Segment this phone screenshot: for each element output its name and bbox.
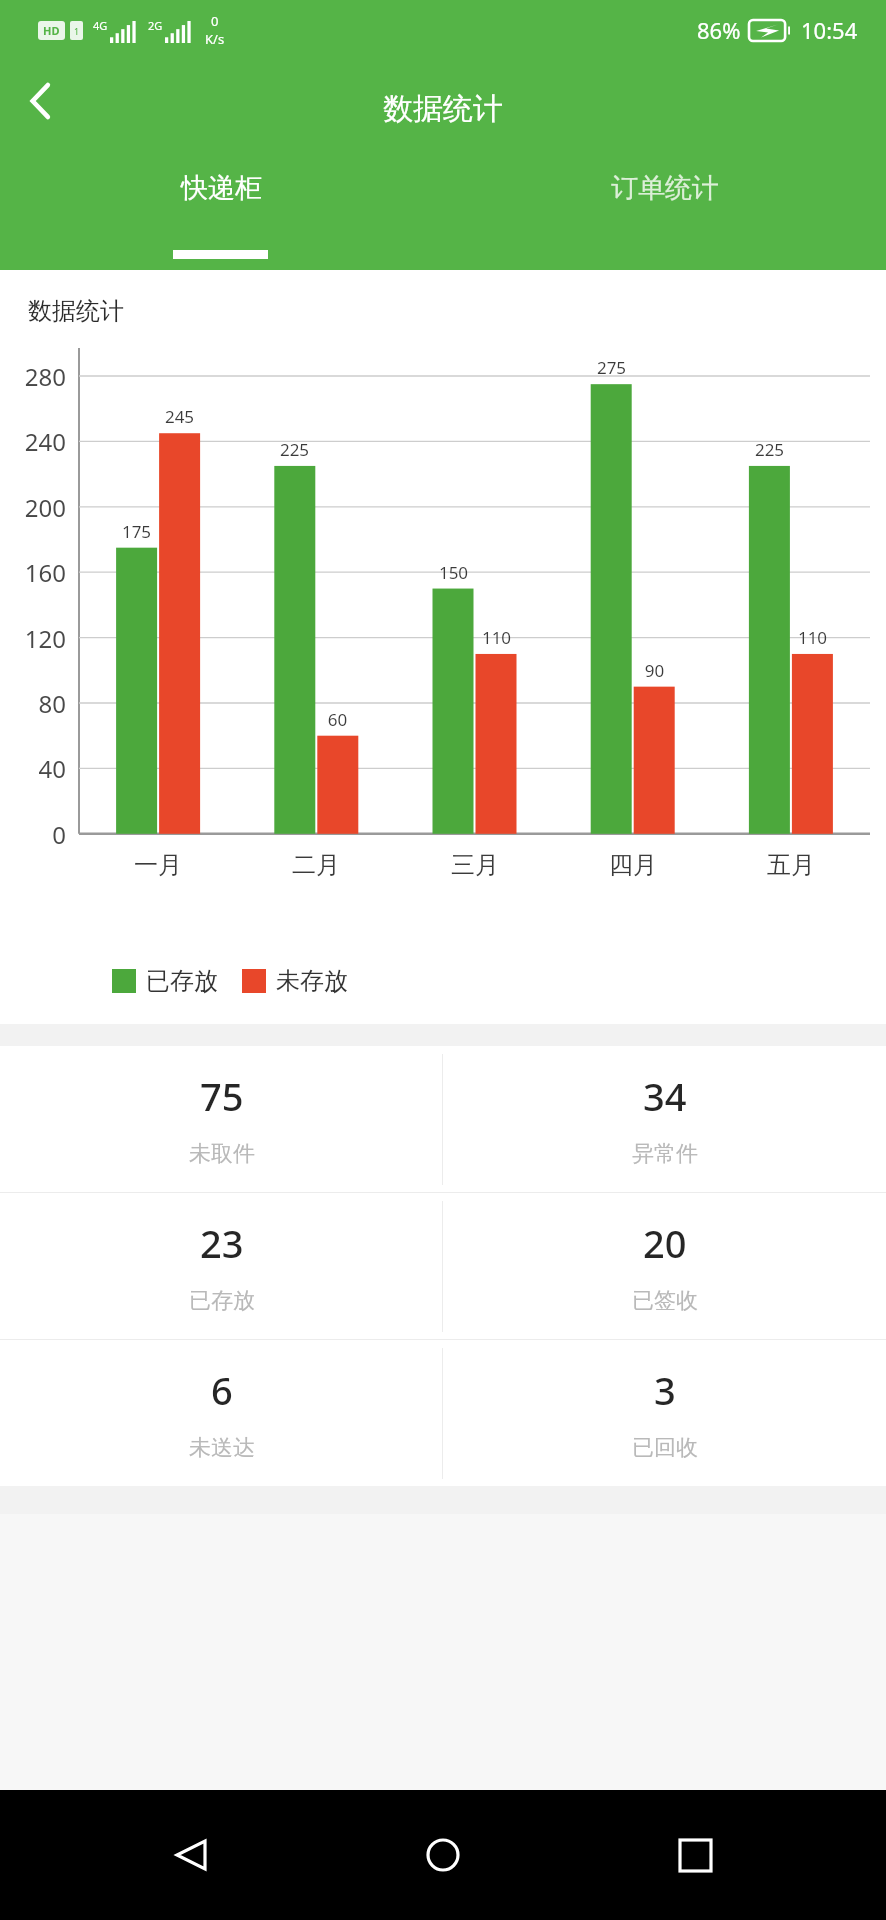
staticText: 160: [0, 556, 66, 589]
staticText: 200: [0, 491, 66, 524]
staticText: 20: [643, 1217, 687, 1269]
staticText: 275: [577, 356, 646, 379]
staticText: 0: [0, 818, 66, 851]
staticText: 未送达: [189, 1434, 255, 1462]
staticText: 245: [145, 405, 214, 428]
button[interactable]: Back: [160, 1824, 222, 1886]
button[interactable]: 34: [443, 1046, 886, 1192]
button[interactable]: 20: [443, 1193, 886, 1339]
button[interactable]: Recent apps: [664, 1824, 726, 1886]
staticText: 数据统计: [383, 90, 503, 128]
staticText: 未取件: [189, 1140, 255, 1168]
button[interactable]: 快递柜: [0, 158, 443, 218]
staticText: 75: [200, 1070, 244, 1122]
staticText: 3: [654, 1364, 676, 1416]
button[interactable]: 23: [0, 1193, 443, 1339]
staticText: 三月: [425, 850, 525, 880]
staticText: 225: [735, 438, 804, 461]
staticText: 86%: [697, 15, 741, 45]
staticText: 225: [260, 438, 329, 461]
staticText: 175: [102, 520, 171, 543]
staticText: 已签收: [632, 1287, 698, 1315]
staticText: 150: [419, 561, 488, 584]
staticText: 110: [778, 626, 847, 649]
staticText: 6: [211, 1364, 233, 1416]
button[interactable]: Back: [8, 68, 74, 134]
staticText: 110: [462, 626, 531, 649]
button[interactable]: 3: [443, 1340, 886, 1486]
button[interactable]: 订单统计: [443, 158, 886, 218]
staticText: 120: [0, 622, 66, 655]
staticText: 0: [211, 12, 219, 30]
staticText: 未存放: [276, 966, 348, 996]
button[interactable]: 75: [0, 1046, 443, 1192]
staticText: 4G: [93, 18, 108, 33]
staticText: 90: [620, 659, 689, 682]
staticText: 已回收: [632, 1434, 698, 1462]
staticText: 40: [0, 752, 66, 785]
staticText: 1: [74, 25, 80, 37]
staticText: 四月: [583, 850, 683, 880]
staticText: 2G: [148, 18, 163, 33]
staticText: 异常件: [632, 1140, 698, 1168]
staticText: 已存放: [189, 1287, 255, 1315]
staticText: K/s: [205, 30, 225, 48]
staticText: 数据统计: [28, 296, 124, 326]
staticText: 订单统计: [611, 171, 719, 205]
staticText: 二月: [266, 850, 366, 880]
staticText: 80: [0, 687, 66, 720]
staticText: 23: [200, 1217, 244, 1269]
staticText: 快递柜: [181, 171, 262, 205]
staticText: 34: [643, 1070, 687, 1122]
staticText: 10:54: [801, 15, 858, 45]
staticText: HD: [43, 23, 60, 38]
staticText: 280: [0, 360, 66, 393]
button[interactable]: 6: [0, 1340, 443, 1486]
button[interactable]: Home: [412, 1824, 474, 1886]
staticText: 一月: [108, 850, 208, 880]
staticText: 五月: [741, 850, 841, 880]
staticText: 60: [303, 708, 372, 731]
staticText: 240: [0, 425, 66, 458]
staticText: 已存放: [146, 966, 218, 996]
